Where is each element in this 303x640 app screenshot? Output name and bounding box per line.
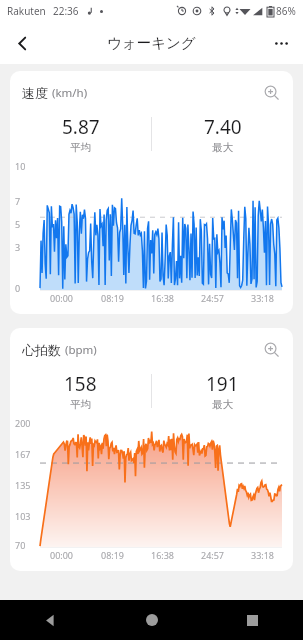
button[interactable]: Back	[0, 600, 101, 640]
staticText: 167	[15, 448, 31, 460]
staticText: Rakuten	[7, 4, 46, 18]
staticText: 24:57	[201, 549, 225, 561]
button[interactable]: More options	[264, 26, 298, 60]
staticText: 24:57	[201, 292, 225, 304]
staticText: 103	[15, 510, 31, 522]
staticText: 速度	[22, 85, 48, 101]
staticText: 86%	[276, 4, 296, 18]
staticText: 16:38	[151, 292, 175, 304]
staticText: 0	[15, 282, 21, 294]
staticText: 心拍数	[22, 342, 61, 358]
staticText: 最大	[212, 141, 233, 154]
button[interactable]: Zoom in	[260, 81, 284, 105]
staticText: 200	[15, 417, 31, 429]
staticText: 00:00	[50, 549, 74, 561]
staticText: 5	[15, 218, 21, 230]
button[interactable]: 速度	[10, 71, 293, 314]
staticText: 08:19	[101, 549, 125, 561]
staticText: (bpm)	[65, 342, 97, 358]
staticText: (km/h)	[52, 85, 88, 101]
staticText: 平均	[70, 398, 91, 411]
staticText: 135	[15, 479, 31, 491]
staticText: 平均	[70, 141, 91, 154]
staticText: 158	[64, 371, 97, 397]
staticText: 00:00	[50, 292, 74, 304]
staticText: ウォーキング	[107, 34, 196, 52]
staticText: 16:38	[151, 549, 175, 561]
button[interactable]: 心拍数	[10, 328, 293, 571]
staticText: 191	[206, 371, 239, 397]
staticText: 最大	[212, 398, 233, 411]
staticText: 22:36	[53, 4, 79, 18]
staticText: 3	[15, 241, 21, 253]
button[interactable]: Zoom in	[260, 338, 284, 362]
staticText: 5.87	[62, 114, 100, 140]
staticText: 08:19	[101, 292, 125, 304]
staticText: 70	[15, 539, 26, 551]
button[interactable]: Recent apps	[202, 600, 303, 640]
staticText: 33:18	[251, 549, 275, 561]
staticText: 7.40	[204, 114, 242, 140]
staticText: 10	[15, 160, 26, 172]
staticText: 7	[15, 195, 21, 207]
button[interactable]: Back	[5, 26, 39, 60]
button[interactable]: Home	[101, 600, 202, 640]
staticText: 33:18	[251, 292, 275, 304]
